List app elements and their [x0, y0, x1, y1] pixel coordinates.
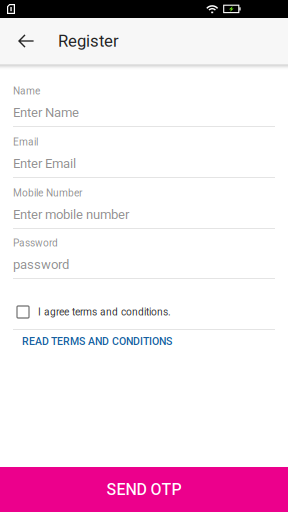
staticText: SEND OTP: [106, 480, 181, 499]
button[interactable]: Mobile Number: [13, 188, 275, 229]
staticText: Enter Name: [13, 105, 79, 120]
button[interactable]: I agree terms and conditions.: [13, 301, 275, 323]
staticText: Register: [58, 31, 119, 51]
button[interactable]: READ TERMS AND CONDITIONS: [13, 333, 172, 350]
staticText: Name: [13, 85, 40, 97]
staticText: Password: [13, 237, 58, 249]
button[interactable]: Email: [13, 137, 275, 178]
staticText: Enter Email: [13, 156, 76, 171]
button[interactable]: Back: [4, 18, 48, 64]
staticText: I agree terms and conditions.: [38, 306, 171, 318]
staticText: Email: [13, 136, 38, 148]
staticText: READ TERMS AND CONDITIONS: [22, 335, 172, 348]
staticText: password: [13, 257, 69, 272]
button[interactable]: Name: [13, 86, 275, 127]
button[interactable]: Password: [13, 238, 275, 279]
button[interactable]: SEND OTP: [0, 467, 288, 512]
staticText: Mobile Number: [13, 187, 82, 199]
staticText: Enter mobile number: [13, 207, 129, 222]
